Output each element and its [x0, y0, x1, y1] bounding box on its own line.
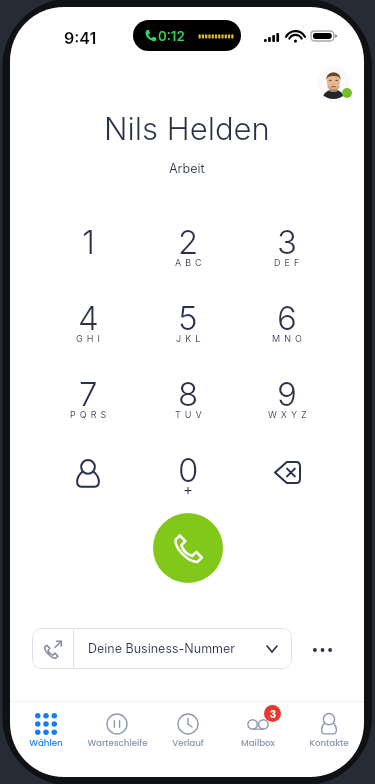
button[interactable]: Warteschleife: [82, 702, 152, 768]
staticText: 4: [78, 298, 99, 338]
staticText: 1: [82, 222, 95, 262]
button[interactable]: Mehr Optionen: [303, 630, 342, 669]
button[interactable]: Wählen: [11, 702, 81, 768]
staticText: 7: [79, 374, 98, 414]
button[interactable]: 9: [249, 374, 325, 436]
staticText: Arbeit: [169, 161, 205, 176]
button[interactable]: Verlauf: [153, 702, 223, 768]
button[interactable]: 1: [50, 222, 126, 284]
button[interactable]: 5: [150, 298, 226, 360]
staticText: ABC: [175, 257, 206, 268]
button[interactable]: 6: [249, 298, 325, 360]
staticText: 0:12: [158, 28, 185, 44]
staticText: TUV: [175, 409, 206, 420]
button[interactable]: 7: [50, 374, 126, 436]
button[interactable]: 4: [50, 298, 126, 360]
staticText: JKL: [176, 333, 205, 344]
button[interactable]: Löschen: [249, 450, 325, 512]
button[interactable]: Kontakte: [294, 702, 364, 768]
staticText: MNO: [272, 333, 306, 344]
staticText: Kontakte: [309, 737, 349, 749]
staticText: 9: [277, 374, 297, 414]
staticText: Mailbox: [241, 737, 275, 749]
button[interactable]: 2: [150, 222, 226, 284]
staticText: 2: [178, 222, 199, 262]
staticText: WXYZ: [268, 409, 311, 420]
button[interactable]: 8: [150, 374, 226, 436]
staticText: 8: [178, 374, 199, 414]
button[interactable]: Deine Business-Nummer: [32, 628, 292, 669]
button[interactable]: Profil: [317, 66, 350, 99]
button[interactable]: 0: [150, 450, 226, 512]
staticText: GHI: [76, 333, 104, 344]
staticText: +: [183, 480, 193, 498]
staticText: 5: [178, 298, 198, 338]
staticText: Deine Business-Nummer: [88, 641, 236, 656]
staticText: 3: [270, 707, 276, 721]
staticText: Warteschleife: [87, 737, 148, 749]
staticText: PQRS: [70, 409, 111, 420]
staticText: 9:41: [64, 28, 97, 47]
button[interactable]: Mailbox: [223, 702, 293, 768]
staticText: Verlauf: [172, 737, 204, 749]
button[interactable]: Kontakt hinzufügen: [50, 450, 126, 512]
staticText: 0: [178, 450, 199, 490]
staticText: Wählen: [29, 737, 63, 749]
staticText: 6: [277, 298, 297, 338]
staticText: DEF: [274, 257, 304, 268]
staticText: Nils Helden: [104, 110, 270, 148]
button[interactable]: Anrufen: [153, 513, 223, 583]
button[interactable]: 3: [249, 222, 325, 284]
staticText: 3: [277, 222, 297, 262]
